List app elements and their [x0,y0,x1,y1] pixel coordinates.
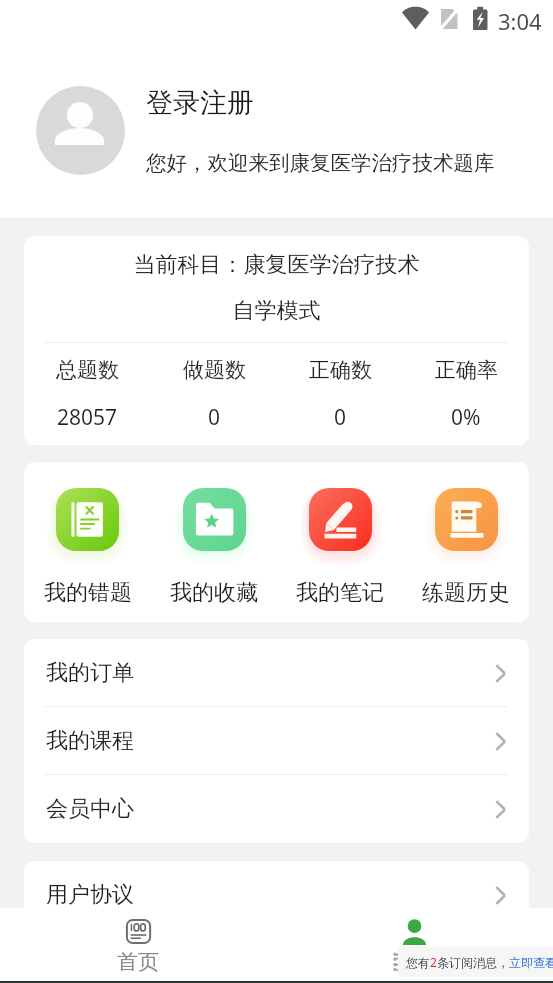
staticText: 首页 [117,949,159,975]
staticText: 用户协议 [46,881,134,909]
staticText: 0 [208,403,221,432]
staticText: 条订阅消息， [437,955,509,970]
staticText: 您好，欢迎来到康复医学治疗技术题库 [146,150,495,176]
button[interactable]: 隐私政策 [24,929,529,983]
button[interactable]: 我的课程 [24,707,529,775]
staticText: 正确率 [435,357,498,383]
button[interactable]: 用户协议 [24,861,529,929]
staticText: 总题数 [56,357,119,383]
staticText: 自学模式 [24,297,529,325]
staticText: 3:04 [498,6,542,36]
staticText: 我的订单 [46,659,134,687]
button[interactable]: 首页 [0,918,276,975]
staticText: 正确数 [309,357,372,383]
staticText: 我的收藏 [170,579,258,607]
button[interactable]: 我的 [276,918,553,975]
staticText: 练题历史 [422,579,510,607]
staticText: 我的课程 [46,727,134,755]
button[interactable]: 我的错题 [24,488,151,607]
staticText: 我的错题 [44,579,132,607]
staticText: 0 [334,403,347,432]
button[interactable]: 我的收藏 [151,488,277,607]
button[interactable]: 我的笔记 [277,488,403,607]
staticText: 登录注册 [146,86,254,120]
button[interactable]: 我的订单 [24,639,529,707]
staticText: 会员中心 [46,795,134,823]
button[interactable]: 会员中心 [24,775,529,843]
staticText: 我的笔记 [296,579,384,607]
staticText: 我的 [394,949,436,975]
staticText: 隐私政策 [46,942,134,970]
staticText: 做题数 [183,357,246,383]
staticText: 28057 [57,403,118,432]
staticText: 0% [451,403,481,432]
staticText: 您有 [406,955,430,970]
staticText: 当前科目：康复医学治疗技术 [24,251,529,279]
staticText: 立即查看 [509,955,553,970]
button[interactable]: 练题历史 [403,488,529,607]
staticText: 2 [430,954,437,970]
